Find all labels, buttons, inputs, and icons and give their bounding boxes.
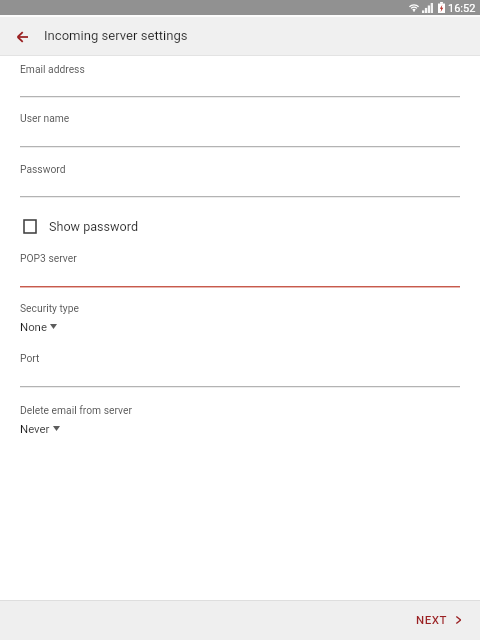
button[interactable]: Never	[0, 418, 480, 438]
button[interactable]	[0, 350, 480, 391]
staticText: Delete email from server	[20, 404, 132, 416]
staticText: Incoming server settings	[44, 28, 188, 43]
staticText: 16:52	[448, 2, 476, 15]
staticText: Port	[20, 352, 40, 364]
staticText: Password	[20, 163, 66, 175]
staticText: Never	[20, 422, 50, 435]
button[interactable]: NEXT	[414, 600, 461, 640]
button[interactable]: None	[0, 316, 480, 336]
staticText: Show password	[49, 219, 139, 234]
staticText: None	[20, 320, 47, 333]
button[interactable]	[0, 300, 480, 337]
staticText: POP3 server	[20, 252, 77, 264]
staticText: User name	[20, 112, 70, 124]
staticText: Security type	[20, 302, 79, 314]
button[interactable]	[0, 250, 480, 291]
button[interactable]	[0, 110, 480, 150]
button[interactable]	[0, 160, 480, 200]
staticText: NEXT	[416, 613, 448, 626]
button[interactable]: Show password	[0, 215, 480, 237]
button[interactable]	[0, 60, 480, 100]
staticText: Email address	[20, 63, 85, 75]
button[interactable]	[0, 402, 480, 439]
button[interactable]: Back	[0, 17, 45, 56]
